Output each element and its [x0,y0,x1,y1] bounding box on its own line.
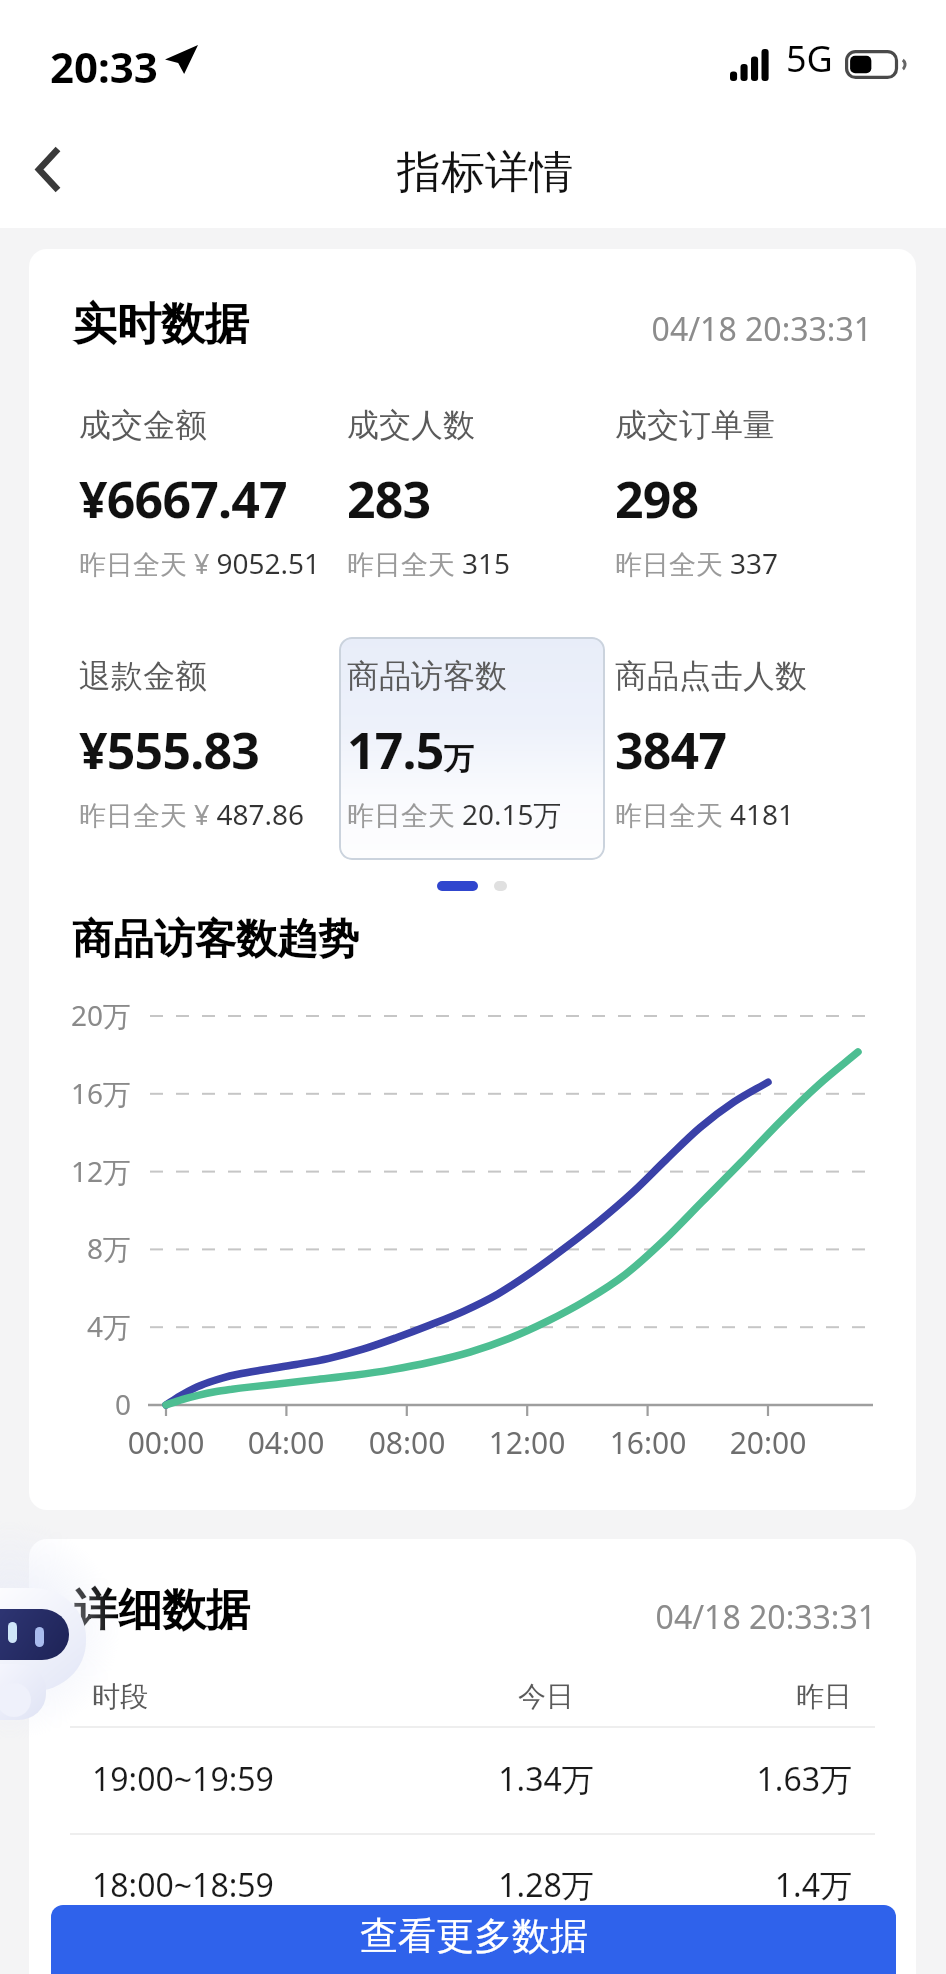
staticText: 商品访客数 [347,656,507,696]
staticText: 商品访客数趋势 [72,914,359,966]
staticText: 昨日全天 315 [347,544,511,582]
staticText: 昨日 [552,1679,852,1714]
staticText: ¥555.83 [79,716,260,784]
staticText: 1.63万 [552,1757,852,1801]
staticText: 昨日全天 4181 [615,795,795,833]
button[interactable]: 成交订单量 [615,391,881,581]
staticText: 20万 [31,996,131,1034]
staticText: 昨日全天 337 [615,544,779,582]
button[interactable]: 成交人数 [347,391,613,581]
staticText: 成交订单量 [615,405,775,445]
staticText: 20:33 [50,38,158,95]
staticText: 283 [347,465,431,533]
staticText: 退款金额 [79,656,207,696]
staticText: 指标详情 [397,145,573,200]
staticText: 16万 [31,1074,131,1112]
staticText: 时段 [92,1679,392,1714]
button[interactable]: 查看更多数据 [51,1905,896,1974]
button[interactable]: 商品访客数 [347,642,613,832]
button[interactable]: 19:00~19:59 [29,1740,916,1830]
staticText: 详细数据 [74,1583,250,1638]
staticText: 昨日全天 ¥ 487.86 [79,795,305,833]
staticText: 04:00 [226,1422,346,1463]
button[interactable]: 18:00~18:59 [29,1846,916,1936]
staticText: 20:00 [708,1422,828,1463]
staticText: 00:00 [106,1422,226,1463]
staticText: 19:00~19:59 [92,1757,392,1801]
staticText: 实时数据 [73,297,249,352]
staticText: 8万 [31,1229,131,1267]
staticText: 298 [615,465,699,533]
staticText: 17.5万 [347,716,473,784]
staticText: 成交人数 [347,405,475,445]
staticText: 1.34万 [396,1757,696,1801]
staticText: 1.28万 [396,1863,696,1907]
staticText: 12:00 [467,1422,587,1463]
staticText: 成交金额 [79,405,207,445]
staticText: 4万 [31,1307,131,1345]
staticText: 5G [786,34,833,83]
staticText: 04/18 20:33:31 [429,307,872,351]
button[interactable]: 退款金额 [79,642,345,832]
button[interactable]: 成交金额 [79,391,345,581]
staticText: 查看更多数据 [360,1912,588,1960]
staticText: 昨日全天 ¥ 9052.51 [79,544,321,582]
staticText: 今日 [396,1679,696,1714]
button[interactable] [339,637,605,860]
staticText: 3847 [615,716,727,784]
staticText: 0 [31,1385,131,1423]
staticText: 12万 [31,1152,131,1190]
staticText: 昨日全天 20.15万 [347,795,562,833]
staticText: 16:00 [588,1422,708,1463]
staticText: 18:00~18:59 [92,1863,392,1907]
staticText: ¥6667.47 [79,465,287,533]
staticText: 1.4万 [552,1863,852,1907]
staticText: 商品点击人数 [615,656,807,696]
staticText: 04/18 20:33:31 [429,1595,876,1639]
button[interactable]: Back [8,110,88,228]
staticText: 08:00 [347,1422,467,1463]
button[interactable]: 商品点击人数 [615,642,881,832]
